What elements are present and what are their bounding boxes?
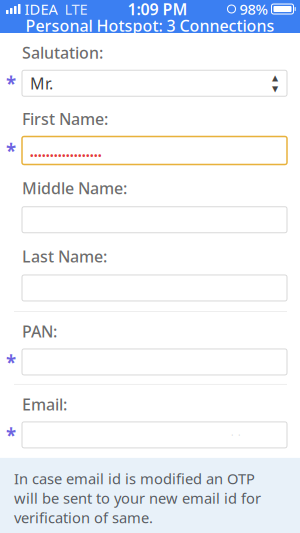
- staticText: *: [6, 138, 16, 163]
- staticText: ▲: [272, 73, 278, 82]
- staticText: Middle Name:: [22, 177, 127, 199]
- staticText: 98%: [239, 0, 267, 19]
- staticText: Last Name:: [22, 246, 107, 267]
- staticText: Email:: [22, 394, 67, 415]
- staticText: First Name:: [22, 108, 108, 129]
- button[interactable]: [22, 349, 287, 375]
- staticText: ••••••••••••••••••: [30, 149, 102, 161]
- staticText: IDEA: [24, 0, 57, 19]
- staticText: PAN:: [22, 321, 57, 342]
- button[interactable]: [22, 275, 287, 301]
- button[interactable]: [22, 207, 287, 233]
- staticText: Personal Hotspot: 3 Connections: [25, 15, 274, 36]
- staticText: *: [6, 422, 16, 447]
- staticText: · ·: [231, 429, 241, 441]
- staticText: Salutation:: [22, 42, 103, 63]
- staticText: Mr.: [30, 73, 53, 94]
- staticText: *: [6, 349, 16, 374]
- staticText: 1:09 PM: [127, 0, 187, 20]
- staticText: *: [6, 71, 16, 96]
- staticText: LTE: [64, 0, 87, 19]
- button[interactable]: · ·: [22, 422, 287, 448]
- button[interactable]: ••••••••••••••••••: [22, 136, 287, 164]
- button[interactable]: Mr.: [22, 70, 287, 96]
- staticText: In case email id is modified an OTP will…: [14, 469, 261, 527]
- staticText: ▼: [272, 84, 278, 93]
